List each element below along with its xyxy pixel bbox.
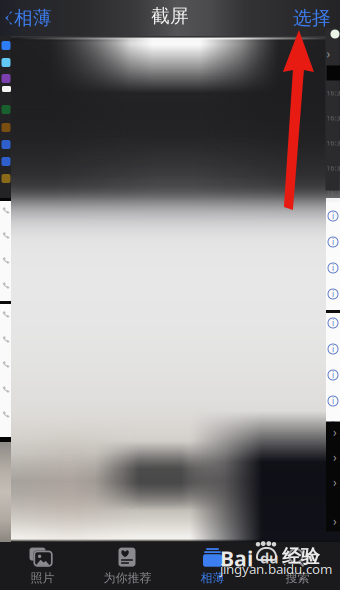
staticText: 16:3 (326, 113, 340, 122)
button[interactable]: 选择 (293, 1, 340, 34)
staticText: 截屏 (151, 4, 189, 27)
staticText: i (332, 344, 334, 354)
staticText: i (332, 263, 334, 273)
staticText: › (326, 45, 330, 61)
staticText: du (260, 548, 279, 567)
staticText: › (333, 449, 337, 465)
staticText: › (333, 474, 337, 490)
staticText: 16:3 (326, 138, 340, 147)
staticText: i (332, 318, 334, 328)
button[interactable]: 搜索 (255, 542, 340, 590)
button[interactable]: 相薄 (0, 1, 52, 34)
staticText: 为你推荐 (103, 571, 151, 585)
staticText: i (332, 289, 334, 299)
staticText: 16:3 (326, 88, 340, 97)
staticText: 16:3 (326, 163, 340, 172)
button[interactable]: 相薄 (170, 542, 255, 590)
staticText: 经验 (282, 545, 320, 568)
staticText: 相薄 (14, 6, 52, 29)
staticText: i (332, 211, 334, 221)
staticText: 选择 (293, 6, 331, 29)
staticText: i (332, 370, 334, 380)
staticText: Bai (220, 544, 253, 572)
staticText: 16:3 (326, 188, 340, 197)
staticText: › (333, 424, 337, 440)
staticText: 相薄 (200, 571, 224, 585)
staticText: 照片 (30, 571, 54, 585)
staticText: i (332, 396, 334, 406)
staticText: 搜索 (285, 571, 309, 585)
staticText: jingyan.baidu.com (220, 560, 332, 578)
button[interactable]: 照片 (0, 542, 85, 590)
button[interactable]: 为你推荐 (85, 542, 170, 590)
staticText: › (333, 540, 337, 556)
staticText: › (333, 513, 337, 529)
staticText: i (332, 237, 334, 247)
staticText: i (332, 422, 334, 432)
